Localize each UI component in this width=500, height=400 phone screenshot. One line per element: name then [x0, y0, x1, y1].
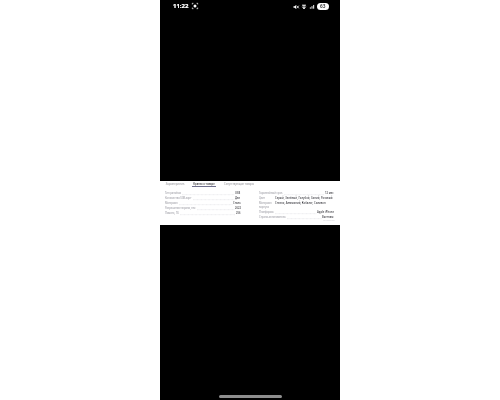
other: VPN	[301, 4, 307, 10]
staticText: Вьетнам	[322, 215, 334, 219]
staticText: Сопутствующие товары	[223, 182, 255, 186]
staticText: 11:22	[173, 2, 189, 10]
button[interactable]: Память, ГБ	[165, 211, 241, 216]
staticText: Тип разъёма	[165, 191, 181, 195]
other: Screen recording	[192, 3, 198, 9]
button[interactable]: Тип разъёма	[165, 191, 241, 196]
other: Muted	[293, 4, 299, 10]
button[interactable]: Разрешение экрана, пкс	[165, 206, 241, 211]
staticText: Две	[235, 196, 241, 200]
staticText: Гарантийный срок	[259, 191, 283, 195]
staticText: 12 мес	[325, 191, 334, 195]
staticText: Количество SIM-карт	[165, 196, 192, 200]
staticText: Цвет	[259, 196, 273, 200]
staticText: Сталь	[233, 201, 241, 205]
button[interactable]: Характеристики	[165, 182, 185, 186]
button[interactable]: Гарантийный срок	[259, 191, 334, 196]
staticText: Платформа	[259, 210, 274, 214]
button[interactable]: Страна-изготовитель	[259, 215, 334, 220]
staticText: Материал	[165, 201, 178, 205]
staticText: USB	[235, 191, 241, 195]
staticText: Разрешение экрана, пкс	[165, 206, 196, 210]
staticText: Материал корпуса	[259, 201, 273, 209]
staticText: Стекло, Алюминий, Кобальт, Силикон	[275, 201, 334, 205]
button[interactable]: Кратко о товаре	[192, 182, 216, 187]
button[interactable]: Сопутствующие товары	[223, 182, 255, 186]
staticText: Характеристики	[165, 182, 185, 186]
staticText: 256	[236, 211, 241, 215]
staticText: Apple iPhone	[317, 210, 334, 214]
staticText: Страна-изготовитель	[259, 215, 286, 219]
other: Signal strength	[309, 4, 315, 10]
staticText: Кратко о товаре	[192, 182, 216, 186]
staticText: Серый, Зелёный, Голубой, Синий, Розовый	[275, 196, 334, 200]
button[interactable]: Количество SIM-карт	[165, 196, 241, 201]
staticText: 2622	[235, 206, 241, 210]
staticText: 63	[320, 3, 326, 10]
button[interactable]: Цвет	[259, 196, 334, 201]
staticText: Память, ГБ	[165, 211, 179, 215]
button[interactable]: Материал корпуса	[259, 201, 334, 210]
button[interactable]: Материал	[165, 201, 241, 206]
staticText: по запросу	[323, 219, 335, 222]
button[interactable]: Платформа	[259, 210, 334, 215]
